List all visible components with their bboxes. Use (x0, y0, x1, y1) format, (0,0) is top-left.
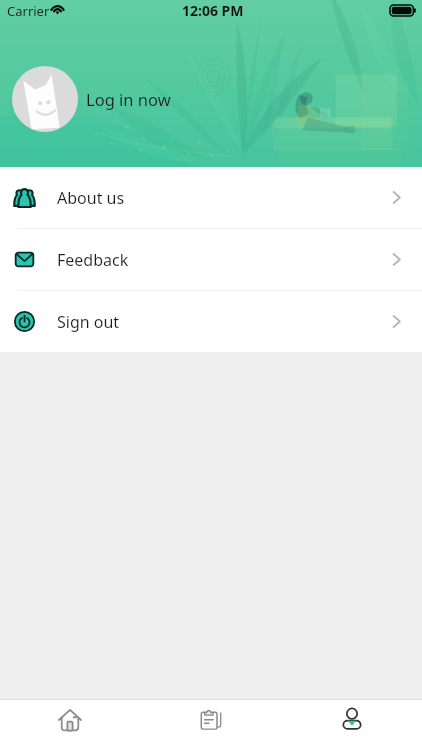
staticText: 12:06 PM (182, 1, 244, 20)
button[interactable]: Feedback (0, 229, 422, 290)
button[interactable]: Orders (140, 700, 281, 750)
staticText: Feedback (57, 249, 129, 271)
button[interactable]: Log in now (12, 66, 171, 132)
button[interactable]: About us (0, 167, 422, 228)
staticText: Sign out (57, 311, 120, 333)
button[interactable]: Sign out (0, 291, 422, 352)
staticText: Carrier (7, 2, 50, 20)
button[interactable]: Home (0, 700, 140, 750)
staticText: Log in now (86, 88, 171, 110)
button[interactable]: Profile (281, 700, 422, 750)
staticText: About us (57, 187, 125, 209)
